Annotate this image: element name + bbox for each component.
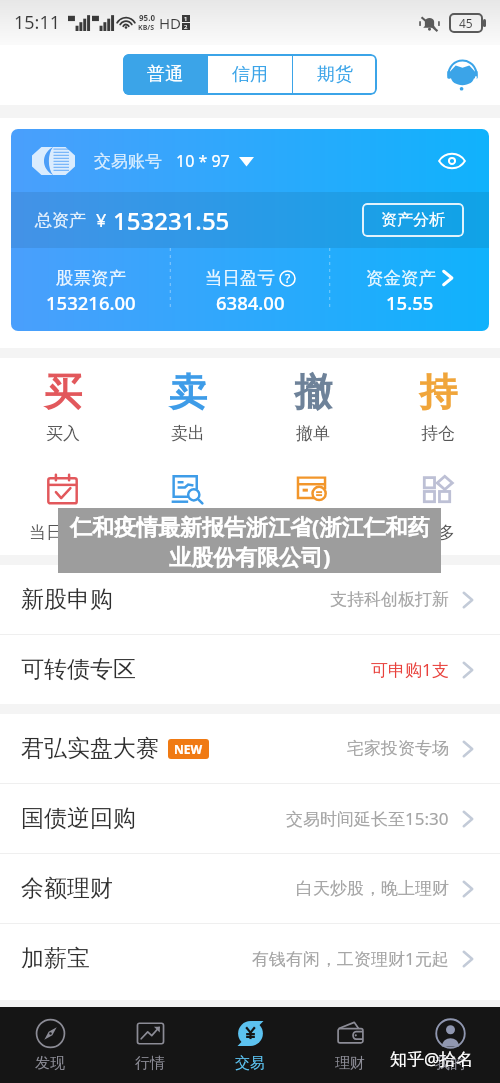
button[interactable]: 国债逆回购	[0, 784, 500, 853]
button[interactable]: 行情	[100, 1007, 200, 1083]
staticText: 卖出	[171, 423, 205, 444]
staticText: 买	[44, 368, 82, 416]
button[interactable]: 交易	[200, 1007, 300, 1083]
button[interactable]: 普通	[123, 54, 207, 95]
button[interactable]: Toggle balance visibility	[435, 144, 469, 178]
staticText: 余额理财	[21, 874, 113, 903]
staticText: 资金资产	[366, 267, 436, 289]
staticText: 君弘实盘大赛	[21, 734, 159, 763]
button[interactable]: 可转债专区	[0, 635, 500, 704]
staticText: 业股份有限公司)	[169, 541, 331, 571]
staticText: 153231.55	[113, 204, 230, 237]
staticText: 期货	[317, 63, 353, 86]
staticText: 信用	[232, 63, 268, 86]
staticText: 股票资产	[56, 267, 126, 289]
staticText: 加薪宝	[21, 944, 90, 973]
staticText: 10 * 97	[176, 150, 230, 172]
button[interactable]: Customer service	[442, 54, 482, 94]
staticText: 普通	[147, 63, 183, 86]
staticText: 资产分析	[381, 210, 445, 230]
staticText: 持仓	[421, 423, 455, 444]
staticText: 总资产	[35, 210, 86, 231]
staticText: 持	[419, 368, 457, 416]
staticText: KB/S	[138, 23, 155, 33]
staticText: 银证转账	[279, 522, 347, 543]
staticText: 交易时间延长至15:30	[286, 807, 449, 830]
button[interactable]: 君弘实盘大赛	[0, 714, 500, 783]
staticText: 宅家投资专场	[347, 738, 449, 759]
staticText: 1	[184, 15, 188, 22]
staticText: 综合查询	[154, 522, 222, 543]
button[interactable]: 综合查询	[125, 458, 250, 555]
staticText: ¥	[96, 208, 107, 233]
button[interactable]: 余额理财	[0, 854, 500, 923]
staticText: 撤	[294, 368, 332, 416]
staticText: 可转债专区	[21, 655, 136, 684]
staticText: 更多	[421, 522, 455, 543]
staticText: 发现	[35, 1054, 65, 1073]
button[interactable]: 卖	[125, 358, 250, 458]
button[interactable]: 资产分析	[362, 203, 464, 237]
button[interactable]: 更多	[375, 458, 500, 555]
staticText: 6384.00	[216, 290, 285, 315]
button[interactable]: 当日盈亏	[171, 248, 330, 331]
staticText: 交易账号	[94, 151, 162, 172]
staticText: 15.55	[386, 290, 434, 315]
button[interactable]: 新股申购	[0, 565, 500, 634]
button[interactable]: 交易账号	[11, 129, 489, 331]
staticText: ?	[285, 270, 291, 286]
button[interactable]: 撤	[250, 358, 375, 458]
staticText: 当日交易	[29, 522, 97, 543]
staticText: 有钱有闲，工资理财1元起	[252, 947, 449, 970]
staticText: 我的	[435, 1054, 465, 1073]
staticText: 国债逆回购	[21, 804, 136, 833]
staticText: 交易	[235, 1054, 265, 1073]
staticText: 2	[184, 23, 188, 30]
button[interactable]: 信用	[208, 54, 292, 95]
button[interactable]: 银证转账	[250, 458, 375, 555]
staticText: 15:11	[14, 10, 61, 35]
staticText: 可申购1支	[371, 658, 449, 681]
button[interactable]: 资金资产	[330, 248, 489, 331]
staticText: HD	[159, 13, 182, 33]
staticText: 当日盈亏	[205, 267, 275, 289]
button[interactable]: 持	[375, 358, 500, 458]
button[interactable]: 我的	[400, 1007, 500, 1083]
staticText: 卖	[169, 368, 207, 416]
staticText: 45	[459, 15, 473, 31]
staticText: 行情	[135, 1054, 165, 1073]
button[interactable]: 当日交易	[0, 458, 125, 555]
staticText: 知乎@拾名	[390, 1047, 474, 1070]
staticText: 153216.00	[46, 290, 136, 315]
button[interactable]: 加薪宝	[0, 924, 500, 993]
staticText: NEW	[174, 741, 203, 757]
staticText: 仁和疫情最新报告浙江省(浙江仁和药	[70, 511, 430, 541]
button[interactable]: 期货	[293, 54, 377, 95]
button[interactable]: 买	[0, 358, 125, 458]
button[interactable]: 理财	[300, 1007, 400, 1083]
staticText: 白天炒股，晚上理财	[296, 878, 449, 899]
button[interactable]: 发现	[0, 1007, 100, 1083]
staticText: 理财	[335, 1054, 365, 1073]
staticText: 新股申购	[21, 585, 113, 614]
staticText: 95.0	[139, 12, 155, 23]
staticText: 撤单	[296, 423, 330, 444]
staticText: 支持科创板打新	[330, 589, 449, 610]
staticText: 买入	[46, 423, 80, 444]
button[interactable]: 股票资产	[11, 248, 171, 331]
